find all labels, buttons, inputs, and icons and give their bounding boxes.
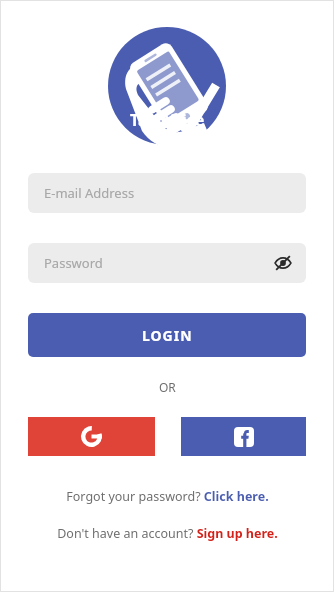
button[interactable]: E-mail Address [28,173,306,213]
staticText: E-mail Address [44,184,135,202]
button[interactable]: Sign in with Facebook [181,417,306,456]
button[interactable]: Don't have an account? Sign up here. [0,525,334,542]
staticText: Don't have an account? Sign up here. [57,525,278,542]
staticText: Forgot your password? Click here. [66,488,269,505]
button[interactable]: Forgot your password? Click here. [0,488,334,505]
button[interactable]: Password [28,243,306,283]
staticText: Password [44,254,103,272]
staticText: OR [159,379,176,395]
button[interactable]: LOGIN [28,313,306,357]
staticText: LOGIN [142,326,193,345]
staticText: TaxOffice [130,109,205,131]
button[interactable]: Sign in with Google [28,417,155,456]
button[interactable]: Show password [270,250,296,276]
